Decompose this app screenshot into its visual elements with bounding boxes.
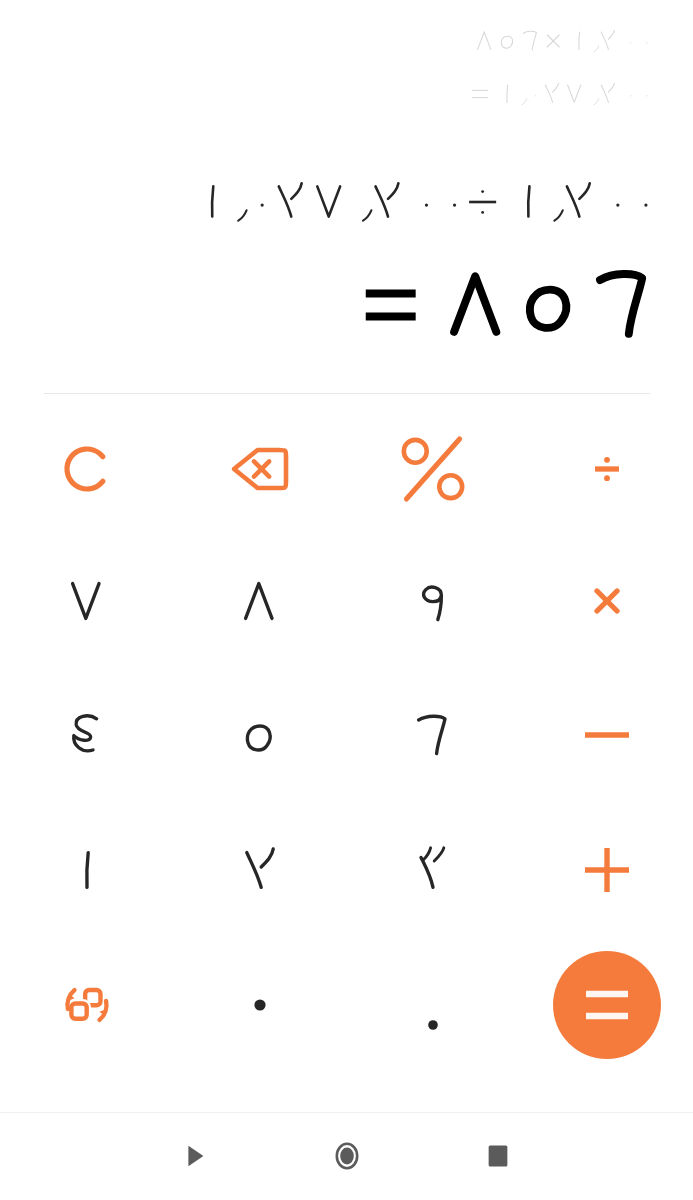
button[interactable]: Minus — [532, 676, 682, 794]
button[interactable]: Divide — [532, 410, 682, 528]
button[interactable]: Recent apps — [462, 1120, 534, 1192]
button[interactable]: Eight — [185, 542, 335, 660]
button[interactable]: Zero — [185, 946, 335, 1064]
button[interactable]: Home — [311, 1120, 383, 1192]
button[interactable]: Four — [12, 676, 162, 794]
button[interactable]: Seven — [12, 542, 162, 660]
button[interactable]: Multiply — [532, 542, 682, 660]
button[interactable]: Back — [159, 1120, 231, 1192]
button[interactable]: Six — [358, 676, 508, 794]
button[interactable]: Equals — [553, 951, 661, 1059]
button[interactable]: Five — [185, 676, 335, 794]
button[interactable]: Plus — [532, 811, 682, 929]
button[interactable]: Clear — [12, 410, 162, 528]
button[interactable]: Decimal point — [358, 946, 508, 1064]
button[interactable]: Nine — [358, 542, 508, 660]
button[interactable]: Percent — [358, 410, 508, 528]
button[interactable]: Two — [185, 811, 335, 929]
button[interactable]: One — [12, 811, 162, 929]
button[interactable]: Backspace — [185, 410, 335, 528]
button[interactable]: Unit converter — [12, 946, 162, 1064]
button[interactable]: Three — [358, 811, 508, 929]
